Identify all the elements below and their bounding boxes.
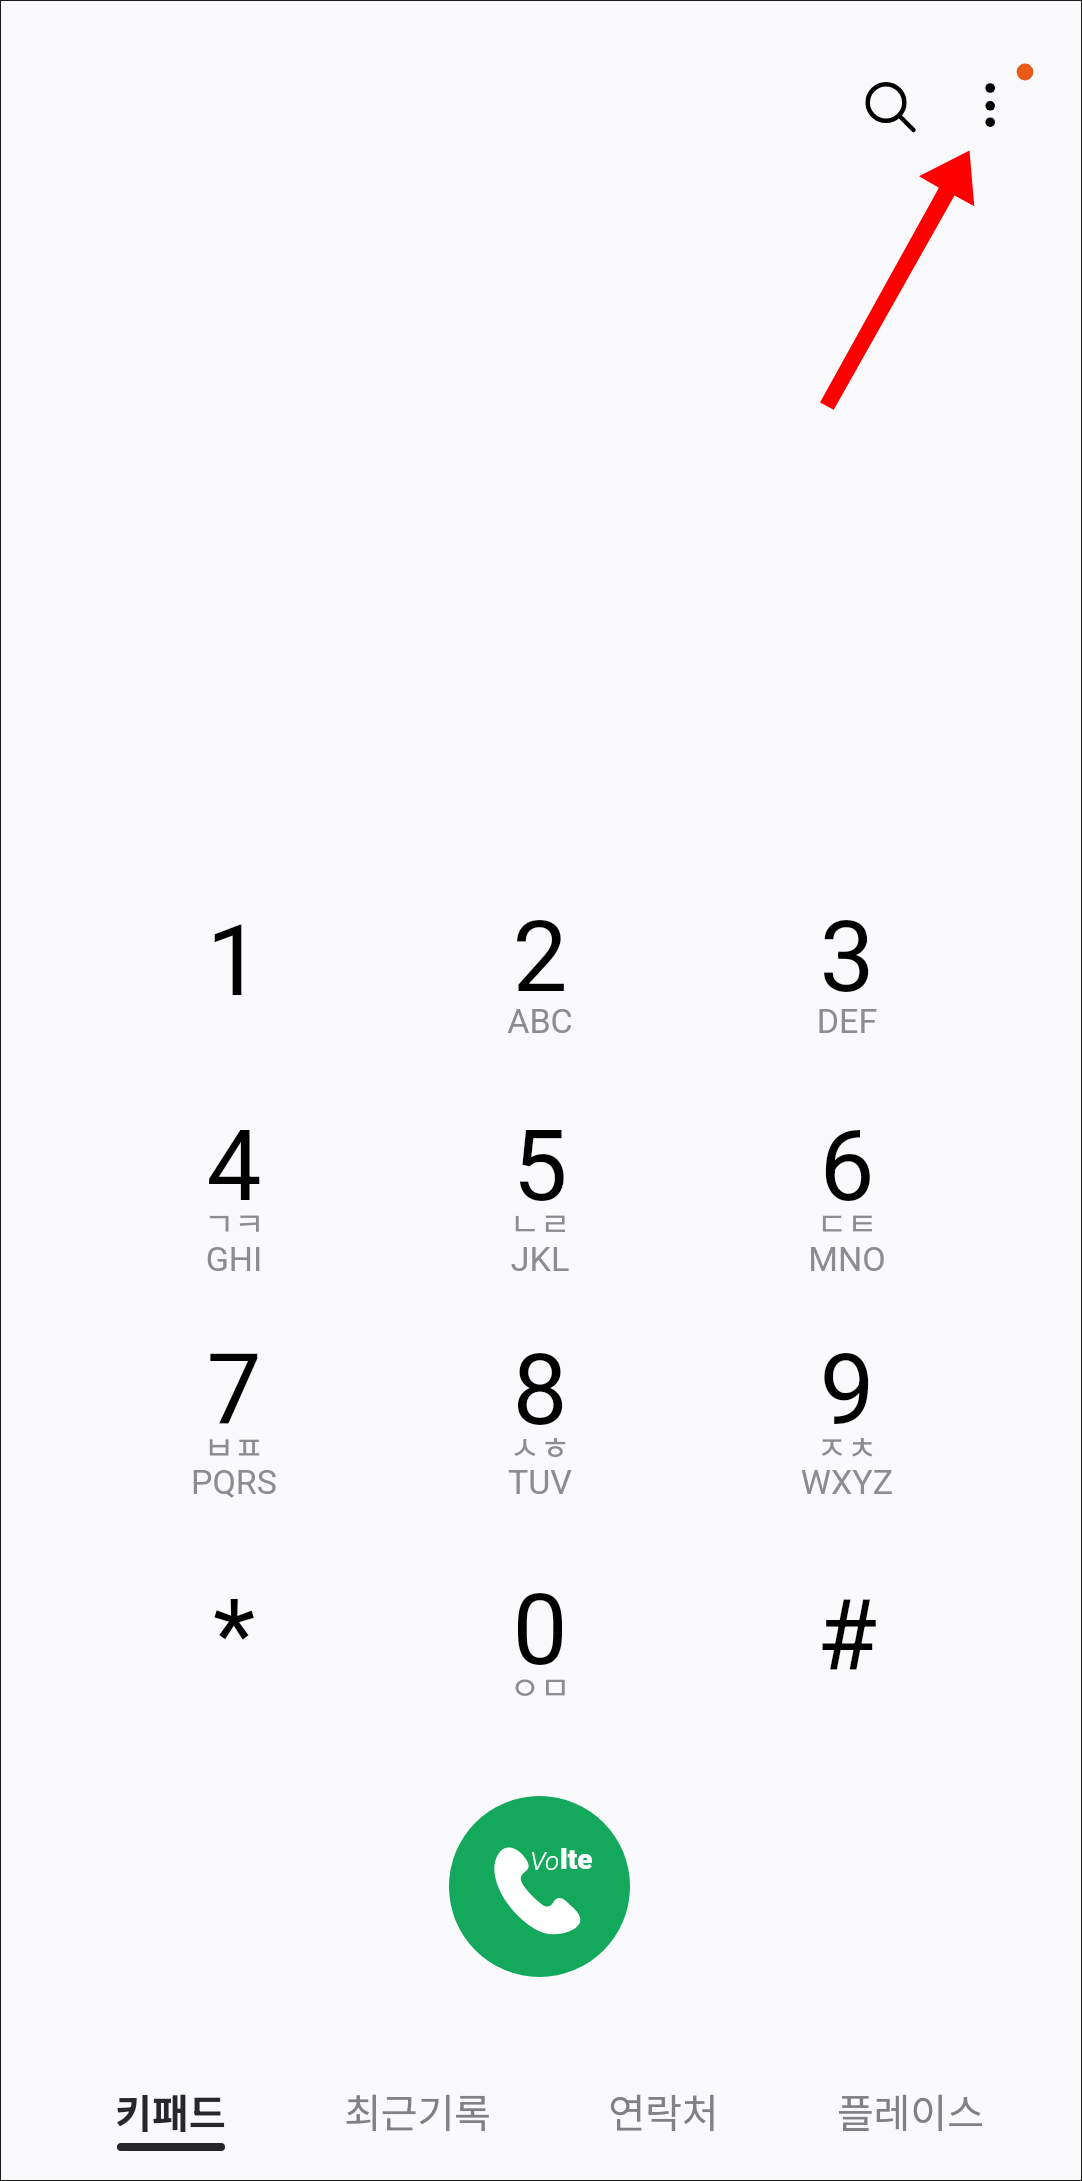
staticText: 4 (89, 1109, 379, 1224)
staticText: # (702, 1579, 992, 1694)
button[interactable]: 3 (702, 880, 992, 1080)
staticText: ㅈㅊ (702, 1422, 992, 1470)
staticText: ABC (395, 1001, 685, 1041)
staticText: ㄴㄹ (395, 1198, 685, 1246)
staticText: MNO (702, 1239, 992, 1279)
staticText: 5 (395, 1109, 685, 1224)
staticText: 7 (89, 1333, 379, 1448)
button[interactable]: 0 (395, 1554, 685, 1754)
staticText: 0 (395, 1573, 685, 1688)
button[interactable]: 2 (395, 880, 685, 1080)
staticText: ㅂㅍ (89, 1422, 379, 1470)
staticText: 3 (702, 900, 992, 1015)
button[interactable]: 6 (702, 1092, 992, 1292)
staticText: ㄷㅌ (702, 1198, 992, 1246)
button[interactable]: * (89, 1554, 379, 1754)
button[interactable]: 최근기록 (294, 2060, 541, 2170)
staticText: 최근기록 (294, 2082, 541, 2140)
button[interactable]: 키패드 (47, 2060, 294, 2170)
staticText: 8 (395, 1333, 685, 1448)
staticText: * (89, 1578, 379, 1693)
button[interactable]: 플레이스 (787, 2060, 1034, 2170)
button[interactable]: 8 (395, 1316, 685, 1516)
button[interactable]: More options (950, 50, 1038, 138)
staticText: GHI (89, 1239, 379, 1279)
button[interactable]: 4 (89, 1092, 379, 1292)
staticText: JKL (395, 1239, 685, 1279)
button[interactable]: # (702, 1554, 992, 1754)
button[interactable]: Search (846, 62, 926, 142)
staticText: 6 (702, 1109, 992, 1224)
staticText: ㅅㅎ (395, 1422, 685, 1470)
staticText: Vo (530, 1846, 560, 1876)
button[interactable]: 5 (395, 1092, 685, 1292)
staticText: TUV (395, 1462, 685, 1502)
staticText: 키패드 (47, 2082, 294, 2140)
staticText: 2 (395, 900, 685, 1015)
staticText: ㅇㅁ (395, 1662, 685, 1710)
staticText: PQRS (89, 1462, 379, 1502)
button[interactable]: 9 (702, 1316, 992, 1516)
button[interactable]: 7 (89, 1316, 379, 1516)
staticText: DEF (702, 1001, 992, 1041)
staticText: 연락처 (540, 2082, 787, 2140)
staticText: ㄱㅋ (89, 1198, 379, 1246)
button[interactable]: Call with VoLTE (449, 1796, 630, 1977)
staticText: 1 (89, 904, 379, 1019)
button[interactable]: 연락처 (540, 2060, 787, 2170)
staticText: 9 (702, 1333, 992, 1448)
staticText: WXYZ (702, 1462, 992, 1502)
staticText: lte (560, 1843, 593, 1876)
staticText: 플레이스 (787, 2082, 1034, 2140)
button[interactable]: 1 (89, 880, 379, 1080)
